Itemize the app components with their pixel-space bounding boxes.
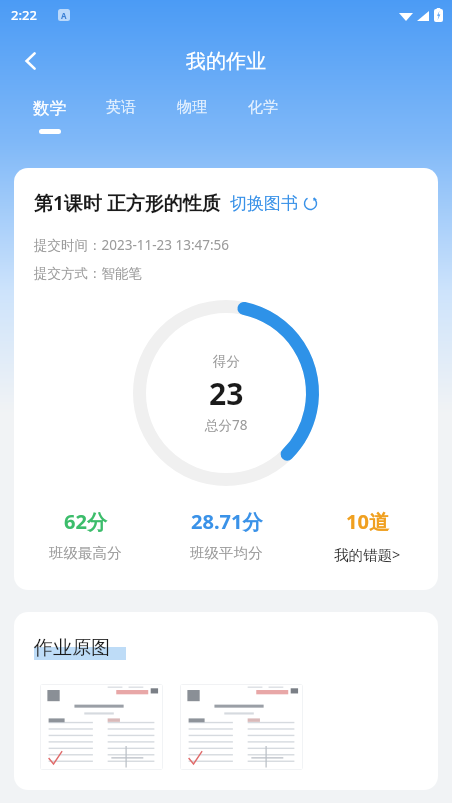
staticText: 得分 [213, 353, 240, 370]
staticText: 数学 [33, 98, 66, 119]
button[interactable]: 10道 [297, 508, 438, 564]
staticText: 我的错题> [334, 544, 401, 564]
button[interactable]: 28.71分 [156, 508, 297, 562]
button[interactable]: 62分 [14, 508, 156, 562]
staticText: 提交方式：智能笔 [34, 265, 142, 282]
staticText: 班级平均分 [190, 544, 263, 562]
staticText: 总分78 [205, 416, 248, 434]
staticText: 提交时间：2023-11-23 13:47:56 [34, 236, 230, 254]
button[interactable]: Homework page [40, 684, 163, 770]
staticText: 我的作业 [186, 49, 266, 74]
button[interactable]: 化学 [227, 92, 298, 150]
staticText: A [61, 10, 67, 21]
staticText: 英语 [106, 98, 136, 117]
button[interactable]: 数学 [14, 92, 85, 150]
staticText: 23 [209, 373, 244, 414]
staticText: 10道 [346, 508, 389, 535]
staticText: 物理 [177, 98, 207, 117]
staticText: 2:22 [11, 6, 37, 24]
button[interactable]: 切换图书 [230, 193, 318, 214]
button[interactable]: Back [8, 38, 54, 84]
staticText: 切换图书 [230, 193, 298, 214]
staticText: 作业原图 [34, 636, 110, 660]
staticText: 28.71分 [191, 508, 263, 535]
staticText: 第1课时 正方形的性质 [34, 190, 221, 216]
staticText: 化学 [248, 98, 278, 117]
button[interactable]: 物理 [156, 92, 227, 150]
staticText: 班级最高分 [49, 544, 122, 562]
staticText: 62分 [64, 508, 107, 535]
button[interactable]: Homework page [180, 684, 303, 770]
button[interactable]: 英语 [85, 92, 156, 150]
